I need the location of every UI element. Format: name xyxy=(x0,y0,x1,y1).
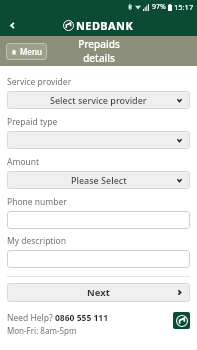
button[interactable]: Select option xyxy=(7,131,190,149)
staticText: Please Select xyxy=(71,174,127,186)
button[interactable]: Text input xyxy=(7,250,190,268)
staticText: details xyxy=(83,51,115,65)
staticText: Amount xyxy=(7,156,40,168)
staticText: Service provider xyxy=(7,76,72,88)
staticText: Need Help? xyxy=(7,312,55,324)
button[interactable]: Please Select xyxy=(7,171,190,189)
staticText: My description xyxy=(7,235,67,247)
button[interactable]: Back xyxy=(2,15,22,35)
staticText: NEDBANK xyxy=(76,18,134,33)
button[interactable]: Select service provider xyxy=(7,91,190,109)
staticText: Prepaids xyxy=(78,37,120,51)
staticText: Select service provider xyxy=(50,94,147,106)
staticText: 15:17 xyxy=(174,2,194,12)
button[interactable]: Menu xyxy=(6,43,47,60)
staticText: Phone number xyxy=(7,196,67,208)
staticText: Prepaid type xyxy=(7,116,58,128)
button[interactable]: Text input xyxy=(7,211,190,229)
button[interactable]: Nedbank logo xyxy=(173,312,190,329)
staticText: 0860 555 111 xyxy=(55,312,109,324)
button[interactable]: Next xyxy=(7,283,190,302)
staticText: Mon-Fri: 8am-5pm xyxy=(7,325,77,336)
staticText: 97% xyxy=(152,2,166,12)
staticText: Next xyxy=(87,286,110,299)
staticText: Menu xyxy=(20,46,42,57)
